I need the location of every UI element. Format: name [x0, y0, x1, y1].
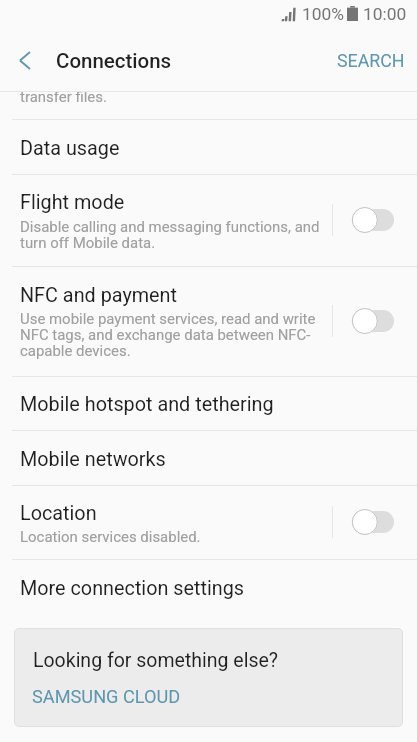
button[interactable]: [0, 560, 417, 614]
staticText: 10:00: [363, 4, 407, 24]
staticText: Looking for something else?: [33, 649, 279, 672]
staticText: Location: [20, 502, 97, 525]
staticText: Location services disabled.: [20, 528, 201, 546]
button[interactable]: [0, 486, 417, 559]
staticText: SEARCH: [337, 50, 405, 71]
staticText: Disable calling and messaging functions,…: [20, 218, 320, 251]
staticText: Connections: [56, 49, 172, 73]
staticText: Mobile hotspot and tethering: [20, 393, 274, 416]
staticText: Use mobile payment services, read and wr…: [20, 310, 316, 359]
button[interactable]: Toggle: [344, 303, 404, 339]
button[interactable]: [0, 175, 417, 266]
button[interactable]: [0, 120, 417, 174]
button[interactable]: Toggle: [344, 202, 404, 238]
staticText: 100%: [302, 4, 345, 24]
button[interactable]: Back: [1, 36, 49, 84]
staticText: SAMSUNG CLOUD: [32, 686, 181, 707]
staticText: NFC and payment: [20, 284, 178, 307]
button[interactable]: Looking for something else?: [14, 628, 403, 727]
button[interactable]: [0, 431, 417, 485]
staticText: Data usage: [20, 137, 120, 160]
staticText: Mobile networks: [20, 448, 166, 471]
staticText: Flight mode: [20, 191, 125, 214]
staticText: transfer files.: [20, 88, 107, 106]
button[interactable]: [0, 267, 417, 376]
staticText: More connection settings: [20, 577, 245, 600]
button[interactable]: Toggle: [344, 504, 404, 540]
button[interactable]: [0, 377, 417, 430]
button[interactable]: SEARCH: [324, 40, 417, 80]
